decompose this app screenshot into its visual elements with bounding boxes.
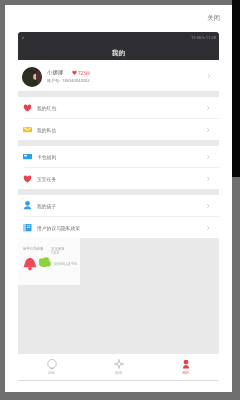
- staticText: 19.0K/s 17:28: [191, 35, 217, 40]
- staticText: 我的: [182, 371, 190, 376]
- staticText: 账户号: 186340043302: [47, 78, 90, 83]
- staticText: 我的: [112, 49, 125, 57]
- other: Open: [205, 72, 213, 80]
- button[interactable]: 消息: [18, 354, 85, 380]
- other: Open: [204, 104, 212, 112]
- button[interactable]: 卡包福利: [18, 146, 219, 167]
- staticText: 更新您认真手机: [54, 262, 78, 266]
- staticText: 723积: [78, 70, 91, 76]
- other: Open: [204, 126, 212, 134]
- staticText: 我的孩子: [37, 203, 57, 209]
- button[interactable]: 我的: [152, 354, 219, 380]
- staticText: 小娜娜: [47, 69, 64, 76]
- staticText: 用户协议与隐私政策: [37, 225, 81, 231]
- button[interactable]: 宝宝任务: [18, 168, 219, 189]
- button[interactable]: 我的私信: [18, 119, 219, 140]
- button[interactable]: 用户协议与隐私政策: [18, 217, 219, 238]
- button[interactable]: 宝宝发育: [38, 256, 52, 270]
- other: Open: [204, 202, 212, 210]
- staticText: 我的红包: [37, 105, 57, 111]
- other: Open: [204, 224, 212, 232]
- staticText: 宝宝发育 1.0.0: [51, 247, 65, 255]
- button[interactable]: 关闭: [207, 14, 220, 22]
- staticText: 发现: [115, 371, 123, 376]
- button[interactable]: 发现: [85, 354, 152, 380]
- button[interactable]: 我的红包: [18, 97, 219, 118]
- other: Open: [204, 175, 212, 183]
- staticText: 卡包福利: [37, 154, 57, 160]
- other: Open: [204, 153, 212, 161]
- button[interactable]: 小娜娜: [18, 60, 219, 91]
- button[interactable]: 我的孩子: [18, 195, 219, 216]
- staticText: 宝宝任务: [37, 176, 57, 182]
- button[interactable]: 新手引导必看: [23, 256, 37, 270]
- staticText: 消息: [48, 371, 56, 376]
- staticText: 我的私信: [37, 127, 57, 133]
- staticText: 新手引导必看: [23, 247, 44, 251]
